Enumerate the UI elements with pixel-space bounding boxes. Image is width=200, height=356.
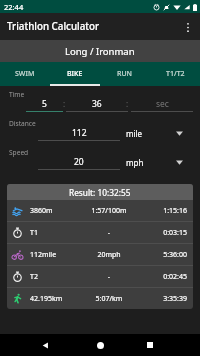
staticText: T2 — [30, 272, 38, 282]
staticText: SWIM — [15, 69, 35, 79]
staticText: BIKE — [67, 69, 83, 79]
button[interactable]: 5 — [26, 98, 63, 112]
staticText: 3:35:39 — [163, 294, 187, 304]
staticText: Triathlon Calculator — [7, 20, 100, 33]
button[interactable]: 3860m — [7, 200, 193, 221]
button[interactable]: 36 — [66, 98, 128, 112]
button[interactable]: BIKE — [50, 62, 100, 86]
button[interactable]: T1 — [7, 222, 193, 243]
staticText: : — [63, 98, 66, 109]
staticText: 5 — [42, 98, 47, 110]
button[interactable]: sec — [131, 98, 193, 112]
staticText: 1:15:16 — [163, 206, 187, 216]
staticText: 36 — [92, 98, 102, 110]
staticText: - — [79, 272, 139, 282]
staticText: Time — [9, 90, 25, 99]
button[interactable]: 112 — [38, 127, 120, 141]
staticText: Result: 10:32:55 — [69, 187, 131, 198]
staticText: 112 — [72, 127, 87, 139]
staticText: RUN — [117, 69, 133, 79]
staticText: 20 — [74, 156, 84, 168]
staticText: 42.195km — [30, 294, 63, 304]
staticText: : — [126, 98, 129, 109]
staticText: 5:36:00 — [163, 250, 187, 260]
staticText: mph — [126, 157, 144, 168]
staticText: T1 — [30, 228, 38, 238]
staticText: T1/T2 — [166, 69, 185, 79]
staticText: 20mph — [79, 250, 139, 260]
button[interactable]: More options — [176, 15, 200, 39]
button[interactable]: mph — [124, 156, 193, 168]
button[interactable]: SWIM — [0, 62, 50, 86]
button[interactable]: mile — [124, 127, 193, 139]
staticText: - — [79, 228, 139, 238]
staticText: 3860m — [30, 206, 53, 216]
staticText: 22:44 — [4, 2, 24, 12]
button[interactable]: T1/T2 — [150, 62, 200, 86]
staticText: 0:03:15 — [163, 228, 187, 238]
button[interactable]: Recents — [139, 334, 161, 356]
staticText: 112mile — [30, 250, 57, 260]
button[interactable]: 20 — [38, 156, 120, 170]
button[interactable]: 42.195km — [7, 288, 193, 309]
staticText: mile — [126, 128, 143, 139]
staticText: 1:57/100m — [79, 206, 139, 216]
button[interactable]: T2 — [7, 266, 193, 287]
staticText: Distance — [9, 119, 36, 128]
staticText: sec — [156, 98, 169, 110]
button[interactable]: Long / Ironman — [0, 40, 200, 62]
staticText: 0:02:45 — [163, 272, 187, 282]
button[interactable]: RUN — [100, 62, 150, 86]
button[interactable]: 112mile — [7, 244, 193, 265]
button[interactable]: Home — [89, 334, 111, 356]
staticText: Long / Ironman — [65, 45, 135, 58]
staticText: 5:07/km — [79, 294, 139, 304]
staticText: Speed — [9, 148, 29, 157]
button[interactable]: Back — [34, 334, 56, 356]
